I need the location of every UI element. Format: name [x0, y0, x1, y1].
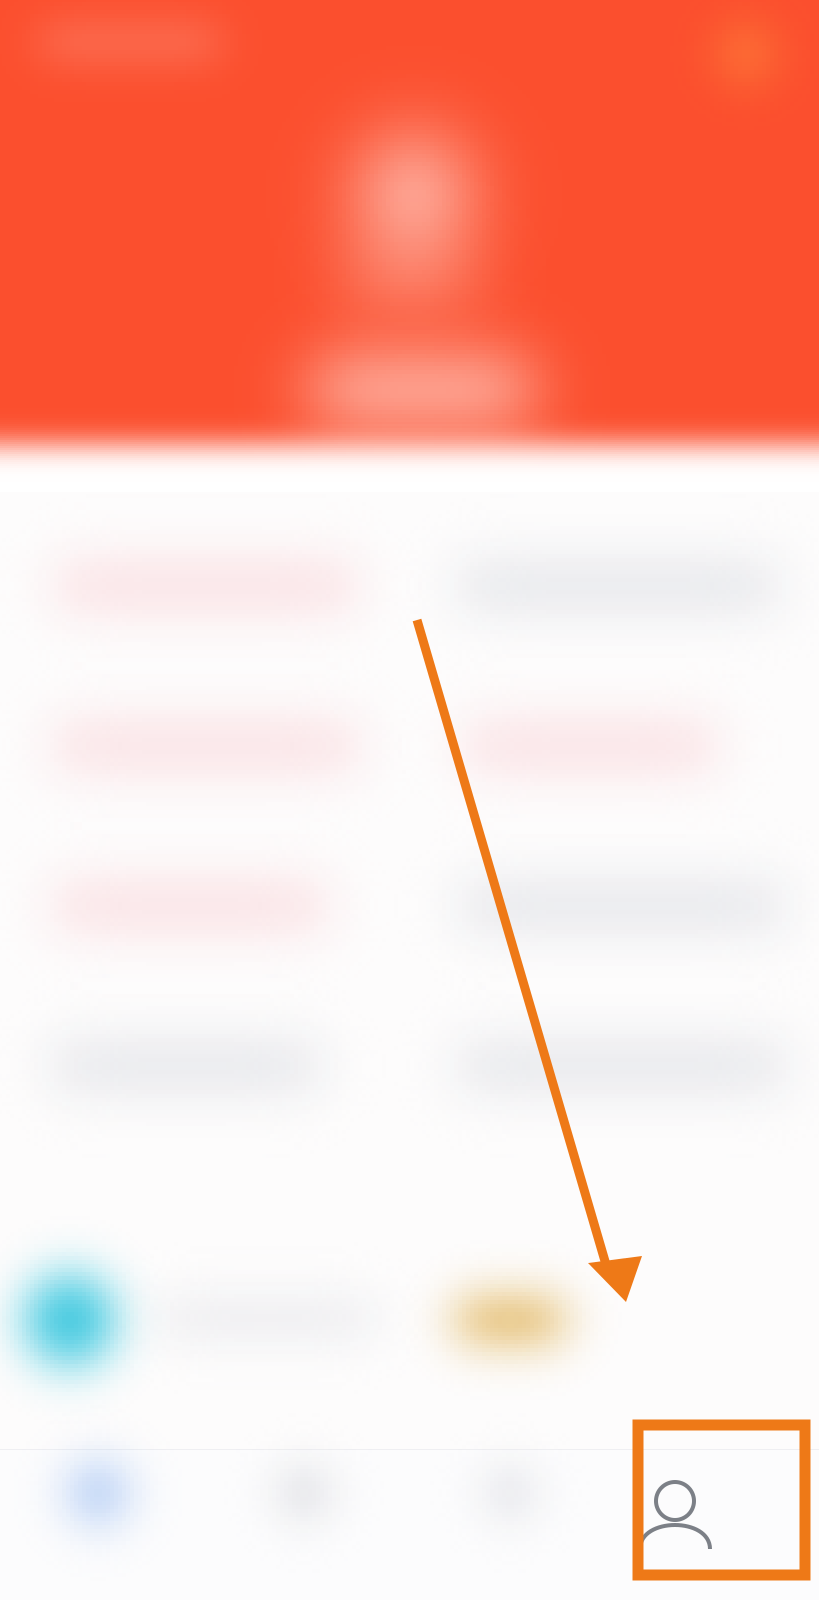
button[interactable]: Me: [613, 1449, 817, 1600]
button[interactable]: List item: [0, 668, 819, 828]
button[interactable]: List item: [0, 988, 819, 1148]
button[interactable]: Home: [0, 1449, 202, 1600]
button[interactable]: Categories: [204, 1449, 408, 1600]
button[interactable]: List item: [0, 828, 819, 988]
button[interactable]: Promotion banner: [0, 1232, 819, 1412]
button[interactable]: List item: [0, 508, 819, 668]
button[interactable]: Cart: [410, 1449, 614, 1600]
